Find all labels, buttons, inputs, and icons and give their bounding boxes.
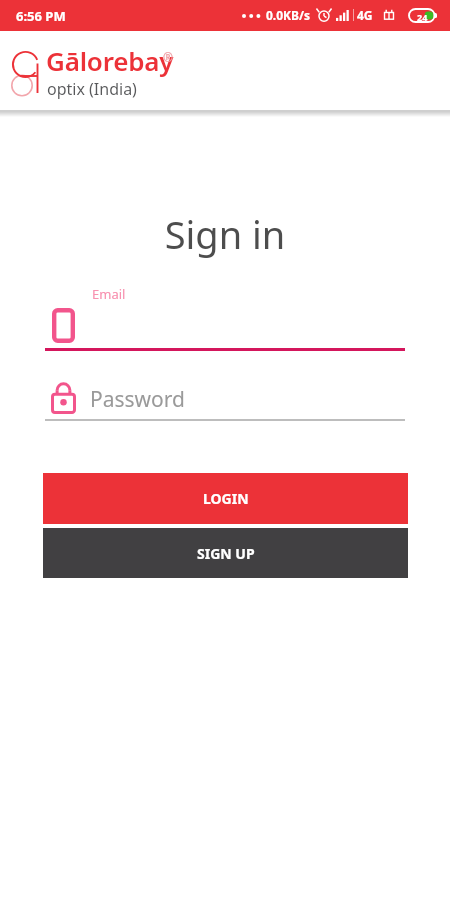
button[interactable]: Password input field bbox=[45, 375, 405, 420]
button[interactable]: LOGIN bbox=[43, 473, 408, 524]
staticText: 6:56 PM bbox=[16, 7, 66, 25]
staticText: Gālorebay bbox=[46, 43, 174, 78]
staticText: 4G bbox=[357, 7, 373, 23]
button[interactable]: Email input field bbox=[45, 282, 405, 351]
staticText: 0.0KB/s bbox=[266, 7, 311, 23]
staticText: ® bbox=[163, 49, 173, 65]
staticText: optix (India) bbox=[47, 78, 137, 100]
staticText: Password bbox=[90, 385, 185, 414]
staticText: 24 bbox=[417, 11, 428, 23]
staticText: Sign in bbox=[0, 208, 450, 260]
button[interactable]: SIGN UP bbox=[43, 528, 408, 578]
staticText: LOGIN bbox=[203, 489, 249, 508]
staticText: SIGN UP bbox=[197, 544, 255, 563]
staticText: Email bbox=[92, 285, 126, 303]
